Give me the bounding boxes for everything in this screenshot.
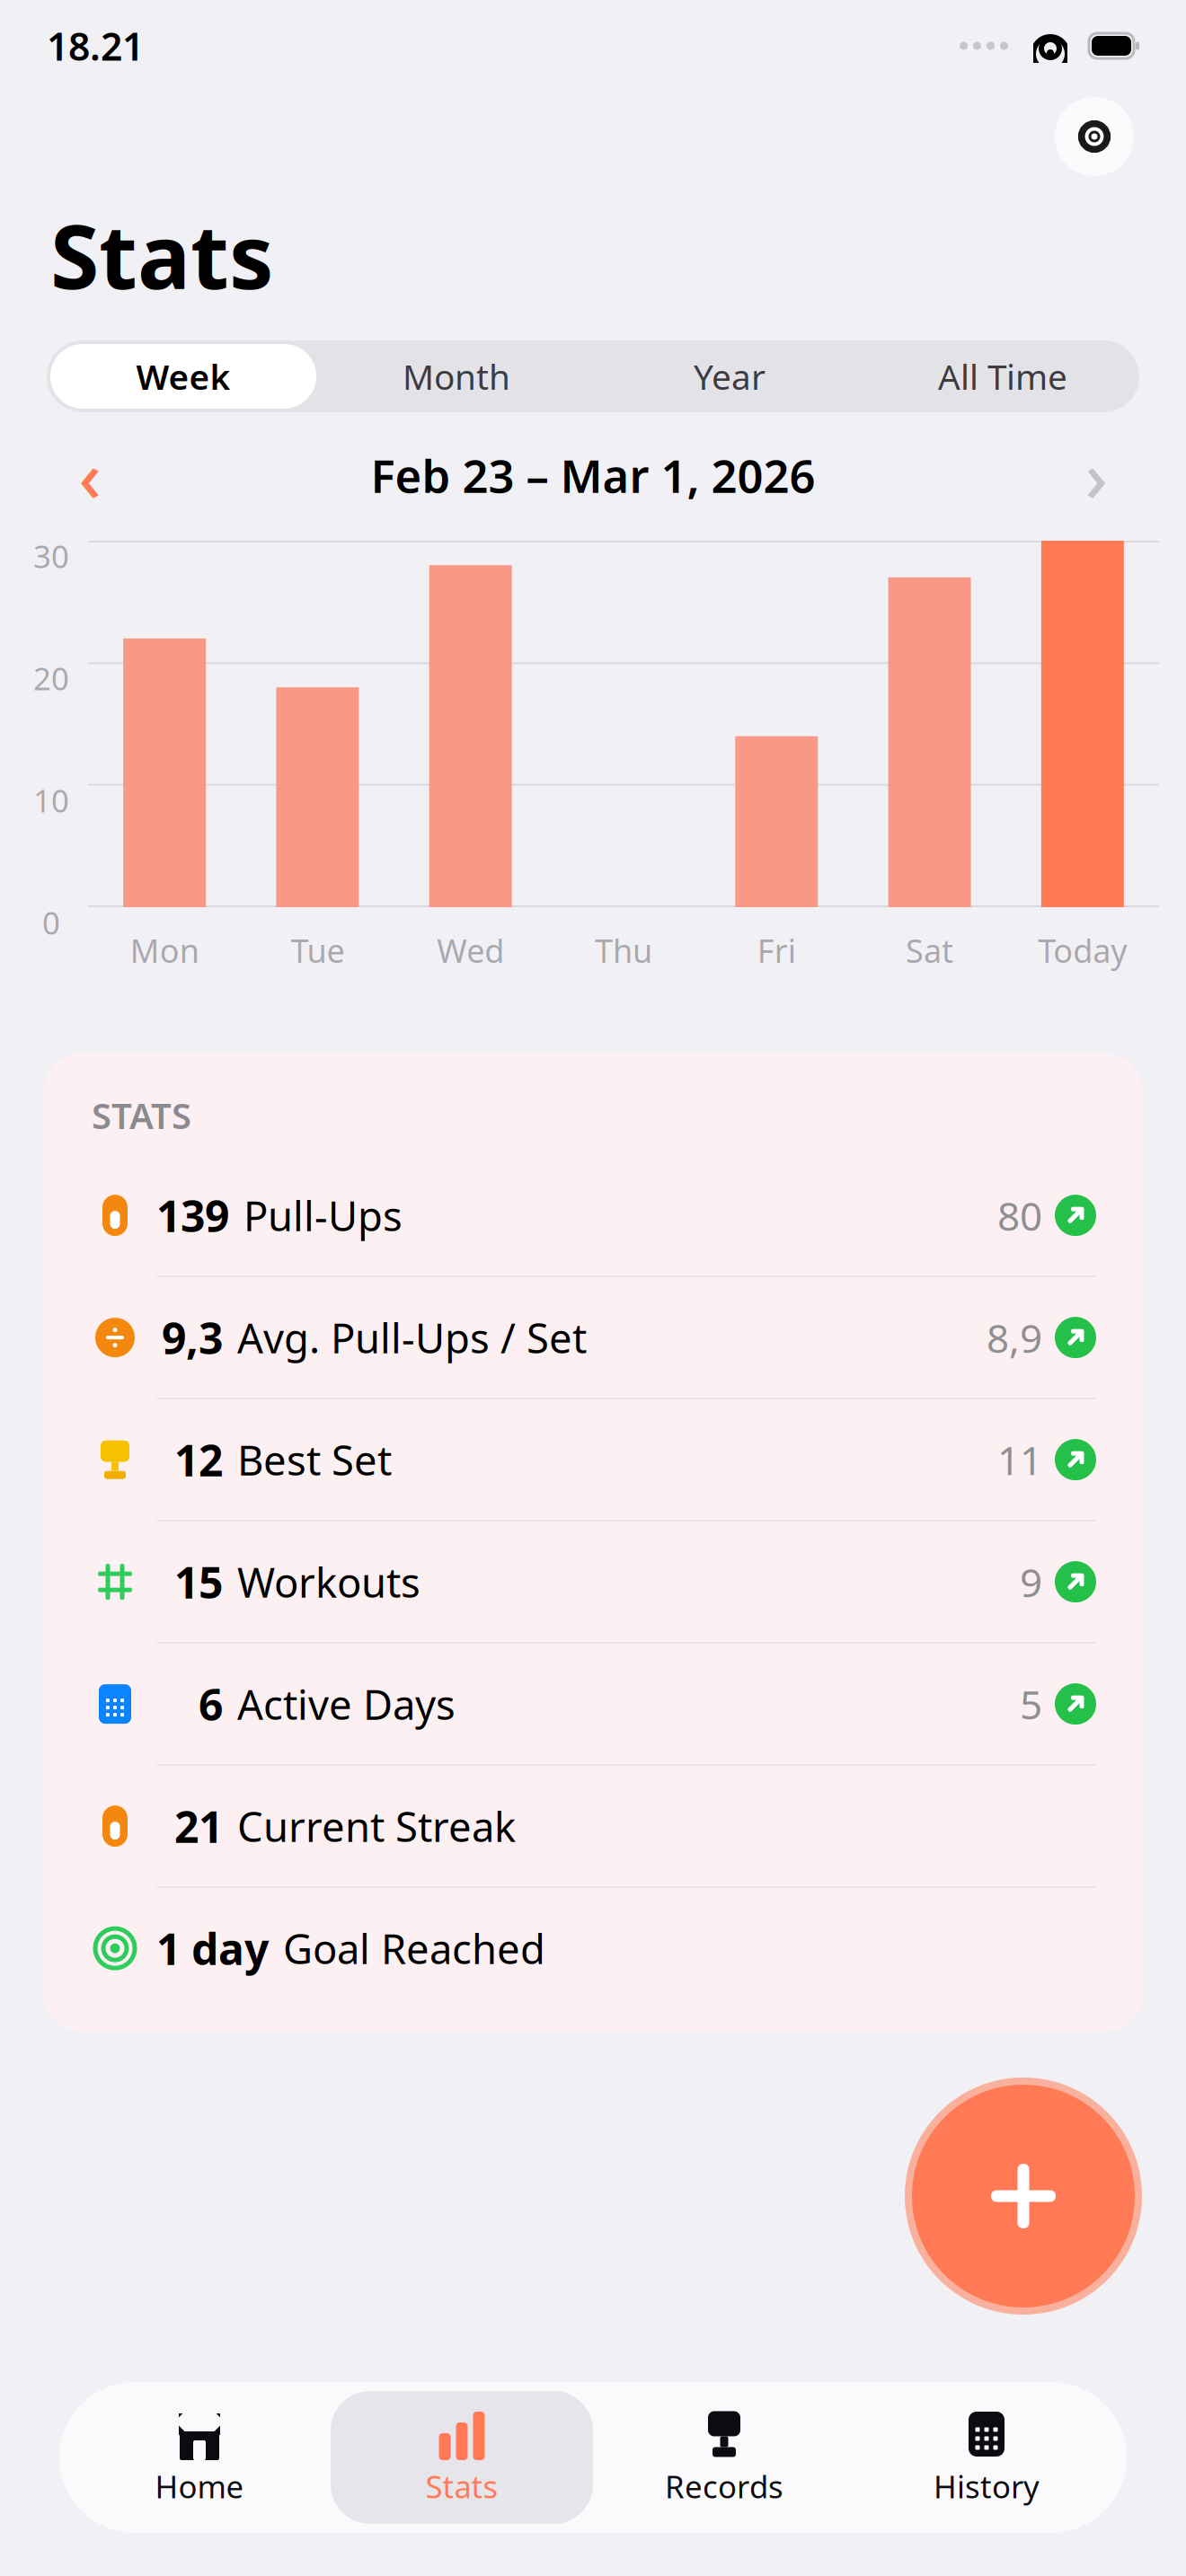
button[interactable]: Previous week bbox=[54, 439, 126, 511]
staticText: Thu bbox=[595, 929, 652, 972]
staticText: 5 bbox=[1020, 1678, 1042, 1730]
staticText: Sat bbox=[906, 929, 953, 972]
button[interactable]: Next week bbox=[1060, 439, 1132, 511]
staticText: 9 bbox=[1020, 1556, 1042, 1608]
staticText: 20 bbox=[33, 657, 69, 699]
staticText: Workouts bbox=[237, 1555, 420, 1609]
staticText: 8,9 bbox=[987, 1311, 1042, 1364]
staticText: Fri bbox=[757, 929, 796, 972]
staticText: 10 bbox=[33, 780, 69, 821]
staticText: Records bbox=[665, 2466, 783, 2507]
staticText: › bbox=[1085, 429, 1107, 521]
button[interactable]: All Time bbox=[866, 340, 1139, 412]
staticText: Feb 23 – Mar 1, 2026 bbox=[371, 445, 815, 505]
staticText: Mon bbox=[130, 929, 199, 972]
staticText: Active Days bbox=[237, 1677, 456, 1731]
staticText: Year bbox=[694, 353, 766, 399]
staticText: Month bbox=[403, 353, 510, 399]
button[interactable]: Year bbox=[593, 340, 866, 412]
staticText: 9,3 bbox=[162, 1309, 223, 1366]
staticText: ‹ bbox=[79, 429, 101, 521]
staticText: Today bbox=[1038, 929, 1127, 972]
staticText: Tue bbox=[291, 929, 344, 972]
button[interactable]: Records bbox=[593, 2391, 855, 2524]
button[interactable]: 1 day bbox=[43, 1888, 1143, 2008]
button[interactable]: Home bbox=[68, 2391, 331, 2524]
button[interactable]: 21 bbox=[43, 1766, 1143, 1886]
staticText: 80 bbox=[997, 1189, 1042, 1242]
button[interactable]: 9,3 bbox=[43, 1277, 1143, 1398]
staticText: 1 day bbox=[156, 1920, 269, 1977]
button[interactable]: Month bbox=[320, 340, 593, 412]
button[interactable]: 12 bbox=[43, 1399, 1143, 1520]
staticText: Avg. Pull-Ups / Set bbox=[237, 1310, 587, 1365]
staticText: STATS bbox=[92, 1091, 191, 1139]
button[interactable]: Settings bbox=[1049, 92, 1139, 181]
staticText: Wed bbox=[437, 929, 504, 972]
staticText: 21 bbox=[174, 1798, 223, 1855]
staticText: 12 bbox=[174, 1431, 223, 1488]
staticText: 139 bbox=[156, 1187, 229, 1244]
staticText: Current Streak bbox=[237, 1799, 516, 1853]
staticText: Week bbox=[136, 353, 230, 399]
button[interactable]: 15 bbox=[43, 1522, 1143, 1642]
staticText: 0 bbox=[42, 902, 60, 943]
button[interactable]: 139 bbox=[43, 1155, 1143, 1276]
staticText: Stats bbox=[50, 196, 274, 313]
staticText: 30 bbox=[33, 535, 69, 577]
staticText: 18.21 bbox=[47, 20, 144, 71]
button[interactable]: Week bbox=[47, 340, 320, 412]
staticText: History bbox=[934, 2466, 1040, 2507]
staticText: Goal Reached bbox=[283, 1921, 545, 1975]
staticText: All Time bbox=[938, 353, 1067, 399]
staticText: 6 bbox=[199, 1675, 223, 1733]
staticText: 11 bbox=[997, 1433, 1042, 1486]
button[interactable]: Add workout bbox=[902, 2075, 1145, 2317]
button[interactable]: Stats bbox=[331, 2391, 593, 2524]
button[interactable]: History bbox=[855, 2391, 1118, 2524]
staticText: Best Set bbox=[237, 1433, 392, 1487]
staticText: 15 bbox=[174, 1553, 223, 1610]
staticText: Pull-Ups bbox=[243, 1188, 403, 1242]
button[interactable]: 6 bbox=[43, 1644, 1143, 1764]
staticText: Home bbox=[155, 2466, 244, 2507]
staticText: Stats bbox=[425, 2466, 498, 2507]
